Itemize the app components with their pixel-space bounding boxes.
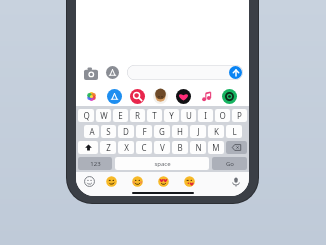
staticText: V: [160, 142, 165, 153]
button[interactable]: P: [232, 109, 247, 122]
staticText: K: [214, 126, 219, 137]
staticText: U: [186, 110, 192, 121]
staticText: L: [232, 126, 237, 137]
button[interactable]: S: [101, 125, 116, 138]
button[interactable]: Emoji keyboard: [83, 175, 96, 188]
button[interactable]: I: [198, 109, 213, 122]
staticText: 123: [90, 160, 101, 168]
button[interactable]: K: [208, 125, 224, 138]
button[interactable]: App 4: [152, 88, 168, 104]
button[interactable]: 123: [78, 157, 112, 170]
button[interactable]: U: [181, 109, 196, 122]
button[interactable]: Q: [78, 109, 94, 122]
button[interactable]: [183, 175, 196, 188]
staticText: X: [124, 142, 129, 153]
button[interactable]: D: [118, 125, 134, 138]
button[interactable]: Send: [127, 65, 243, 80]
button[interactable]: Key: [226, 141, 247, 154]
button[interactable]: Z: [100, 141, 116, 154]
button[interactable]: [105, 175, 118, 188]
button[interactable]: T: [147, 109, 162, 122]
staticText: J: [197, 126, 200, 137]
button[interactable]: App 7: [221, 88, 237, 104]
staticText: C: [141, 142, 147, 153]
staticText: H: [177, 126, 183, 137]
button[interactable]: J: [190, 125, 206, 138]
staticText: G: [159, 126, 165, 137]
button[interactable]: Dictation: [229, 175, 242, 188]
button[interactable]: L: [226, 125, 242, 138]
staticText: T: [152, 110, 157, 121]
staticText: P: [237, 110, 242, 121]
button[interactable]: App 6: [198, 88, 214, 104]
button[interactable]: App 3: [129, 88, 145, 104]
button[interactable]: B: [172, 141, 188, 154]
staticText: Go: [226, 160, 234, 168]
staticText: Q: [83, 110, 90, 121]
button[interactable]: A: [84, 125, 99, 138]
button[interactable]: X: [118, 141, 134, 154]
button[interactable]: F: [136, 125, 152, 138]
button[interactable]: C: [136, 141, 152, 154]
staticText: E: [118, 110, 123, 121]
staticText: D: [123, 126, 129, 137]
button[interactable]: Go: [212, 157, 247, 170]
button[interactable]: Camera: [82, 64, 99, 81]
button[interactable]: App 1: [83, 88, 99, 104]
staticText: S: [106, 126, 111, 137]
button[interactable]: H: [172, 125, 188, 138]
button[interactable]: E: [113, 109, 128, 122]
staticText: I: [204, 110, 207, 121]
button[interactable]: R: [130, 109, 145, 122]
staticText: O: [219, 110, 226, 121]
button[interactable]: space: [115, 157, 209, 170]
button[interactable]: Key: [78, 141, 98, 154]
button[interactable]: App 2: [106, 88, 122, 104]
button[interactable]: Apps: [104, 64, 121, 81]
staticText: space: [154, 160, 171, 168]
button[interactable]: O: [215, 109, 230, 122]
button[interactable]: W: [96, 109, 111, 122]
staticText: Y: [169, 110, 174, 121]
button[interactable]: [157, 175, 170, 188]
staticText: N: [195, 142, 202, 153]
staticText: W: [100, 110, 108, 121]
button[interactable]: V: [154, 141, 170, 154]
staticText: Z: [106, 142, 111, 153]
button[interactable]: G: [154, 125, 170, 138]
button[interactable]: M: [208, 141, 224, 154]
button[interactable]: App 5: [175, 88, 191, 104]
button[interactable]: Y: [164, 109, 179, 122]
staticText: B: [177, 142, 183, 153]
button[interactable]: [131, 175, 144, 188]
staticText: F: [142, 126, 147, 137]
staticText: A: [89, 126, 95, 137]
button[interactable]: Send: [229, 66, 242, 79]
staticText: M: [212, 142, 220, 153]
button[interactable]: N: [190, 141, 206, 154]
staticText: R: [135, 110, 140, 121]
